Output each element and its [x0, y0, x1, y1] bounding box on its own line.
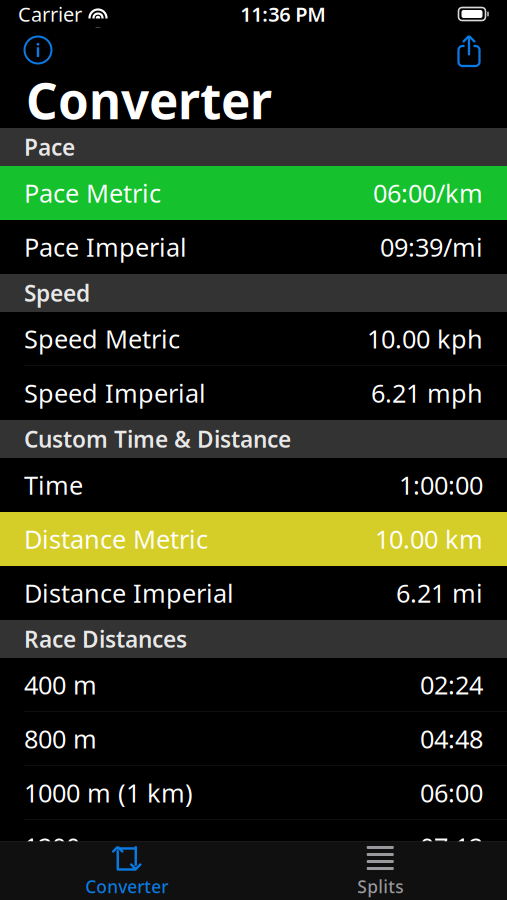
- staticText: 07:12: [420, 830, 483, 863]
- button[interactable]: Share: [453, 29, 497, 71]
- button[interactable]: Distance Imperial: [0, 566, 507, 620]
- staticText: Pace: [24, 132, 75, 162]
- staticText: Converter: [26, 67, 272, 133]
- staticText: Speed: [24, 278, 90, 308]
- button[interactable]: Splits: [253, 842, 507, 900]
- button[interactable]: Converter: [0, 842, 253, 900]
- button[interactable]: Info: [10, 30, 54, 70]
- button[interactable]: Pace Imperial: [0, 220, 507, 274]
- button[interactable]: 800 m: [0, 712, 507, 766]
- staticText: 09:39/mi: [380, 230, 483, 264]
- staticText: Custom Time & Distance: [24, 424, 291, 454]
- staticText: 02:24: [420, 668, 483, 701]
- staticText: 06:00/km: [373, 176, 483, 210]
- button[interactable]: Speed Metric: [0, 312, 507, 366]
- staticText: Race Distances: [24, 624, 187, 654]
- staticText: Distance Imperial: [24, 576, 234, 610]
- staticText: 400 m: [24, 668, 97, 701]
- staticText: Distance Metric: [24, 522, 208, 556]
- button[interactable]: Pace Metric: [0, 166, 507, 220]
- staticText: 6.21 mi: [396, 576, 483, 610]
- staticText: 10.00 km: [375, 522, 483, 556]
- staticText: 06:00: [420, 776, 483, 809]
- staticText: Carrier: [18, 1, 82, 27]
- button[interactable]: Time: [0, 458, 507, 512]
- staticText: 800 m: [24, 722, 97, 755]
- staticText: Converter: [85, 875, 168, 898]
- staticText: 04:48: [420, 722, 483, 755]
- button[interactable]: Speed Imperial: [0, 366, 507, 420]
- staticText: 6.21 mph: [371, 376, 483, 410]
- button[interactable]: 400 m: [0, 658, 507, 712]
- staticText: Speed Metric: [24, 322, 180, 355]
- button[interactable]: Distance Metric: [0, 512, 507, 566]
- staticText: 11:36 PM: [240, 1, 326, 27]
- staticText: 1:00:00: [399, 468, 483, 502]
- staticText: Pace Metric: [24, 176, 161, 210]
- staticText: Splits: [357, 875, 403, 898]
- staticText: 1200 m: [24, 830, 111, 863]
- staticText: 10.00 kph: [367, 322, 483, 355]
- staticText: Speed Imperial: [24, 376, 206, 410]
- staticText: Time: [24, 468, 83, 502]
- staticText: 1000 m (1 km): [24, 776, 193, 809]
- staticText: Pace Imperial: [24, 230, 187, 264]
- button[interactable]: 1000 m (1 km): [0, 766, 507, 820]
- button[interactable]: 1200 m: [0, 820, 507, 874]
